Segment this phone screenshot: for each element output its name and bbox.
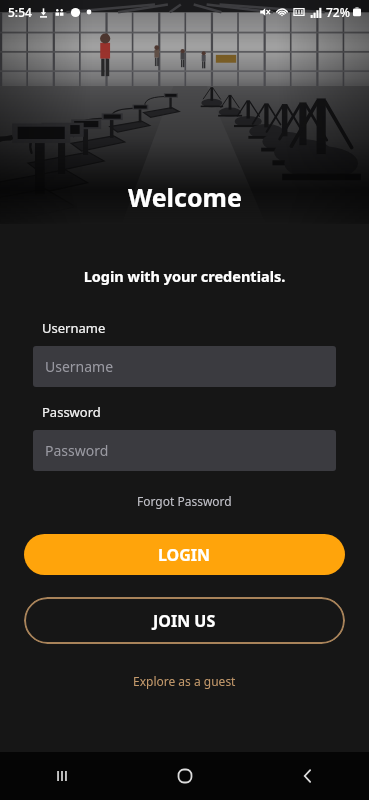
button[interactable]: Explore as a guest (125, 670, 244, 692)
button[interactable]: Forgot Password (129, 490, 240, 512)
button[interactable]: Home (123, 752, 246, 800)
button[interactable]: Recent apps (0, 752, 123, 800)
button[interactable]: Password (33, 430, 336, 471)
staticText: Forgot Password (137, 493, 232, 509)
staticText: Password (45, 441, 109, 460)
staticText: Password (42, 403, 101, 421)
staticText: Username (45, 357, 114, 376)
staticText: LOGIN (158, 544, 211, 566)
staticText: JOIN US (153, 610, 216, 632)
button[interactable]: LOGIN (24, 534, 345, 575)
button[interactable]: JOIN US (24, 597, 345, 644)
button[interactable]: Username (33, 346, 336, 387)
staticText: Login with your credentials. (0, 266, 369, 286)
staticText: 72% (326, 4, 350, 20)
staticText: Explore as a guest (133, 673, 236, 689)
staticText: 5:54 (8, 4, 32, 20)
staticText: Username (42, 319, 106, 337)
staticText: Welcome (128, 180, 242, 214)
button[interactable]: Back (246, 752, 369, 800)
